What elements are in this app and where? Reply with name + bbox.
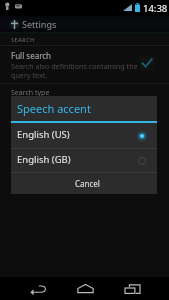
button[interactable]: Recent apps bbox=[120, 277, 144, 300]
staticText: Search type bbox=[11, 88, 50, 98]
staticText: SEARCH bbox=[11, 36, 35, 43]
staticText: Cancel bbox=[75, 178, 100, 189]
staticText: Full search bbox=[11, 50, 52, 61]
button[interactable]: Back bbox=[26, 277, 50, 300]
button[interactable]: Full search bbox=[0, 46, 169, 83]
staticText: English (GB) bbox=[17, 153, 136, 166]
staticText: Search also definitions containing the q… bbox=[11, 61, 143, 80]
button[interactable]: Cancel bbox=[11, 173, 157, 194]
button[interactable]: English (GB) bbox=[11, 149, 157, 172]
button[interactable]: Home bbox=[73, 277, 97, 300]
staticText: Speech accent bbox=[17, 101, 91, 116]
staticText: English (US) bbox=[17, 128, 136, 141]
button[interactable]: English (US) bbox=[11, 123, 157, 148]
staticText: Settings bbox=[22, 18, 57, 30]
staticText: 14:38 bbox=[143, 2, 168, 15]
